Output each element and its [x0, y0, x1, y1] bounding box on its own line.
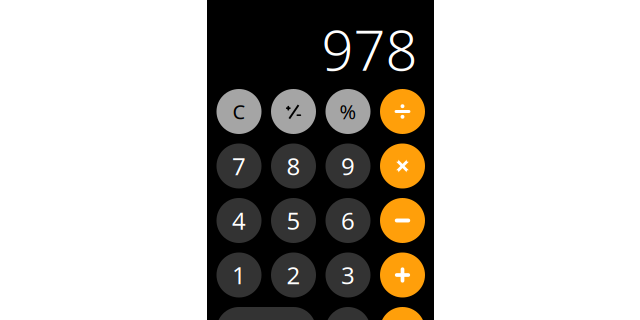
button[interactable]: 7: [216, 143, 261, 188]
button[interactable]: 6: [325, 198, 370, 243]
button[interactable]: %: [325, 89, 370, 134]
staticText: 978: [321, 12, 417, 86]
staticText: %: [339, 98, 356, 125]
button[interactable]: Equals: [380, 307, 425, 320]
button[interactable]: 2: [271, 252, 316, 297]
button[interactable]: 1: [216, 252, 261, 297]
button[interactable]: C: [216, 89, 261, 134]
staticText: 5: [286, 205, 300, 236]
button[interactable]: 9: [325, 143, 370, 188]
button[interactable]: Multiply: [380, 143, 425, 188]
staticText: 3: [341, 259, 355, 291]
button[interactable]: Minus: [380, 198, 425, 243]
staticText: 7: [232, 150, 246, 182]
staticText: 2: [286, 259, 300, 291]
staticText: C: [232, 98, 245, 125]
button[interactable]: .: [325, 307, 370, 320]
button[interactable]: Divide: [380, 89, 425, 134]
staticText: 9: [341, 150, 355, 182]
button[interactable]: 4: [216, 198, 261, 243]
staticText: 1: [232, 259, 246, 291]
button[interactable]: 3: [325, 252, 370, 297]
button[interactable]: Plus: [380, 252, 425, 297]
button[interactable]: 8: [271, 143, 316, 188]
button[interactable]: Positive Negative: [271, 89, 316, 134]
staticText: 4: [232, 205, 246, 236]
staticText: 8: [286, 150, 300, 182]
staticText: 6: [341, 205, 355, 236]
button[interactable]: 5: [271, 198, 316, 243]
button[interactable]: 0: [216, 307, 316, 320]
